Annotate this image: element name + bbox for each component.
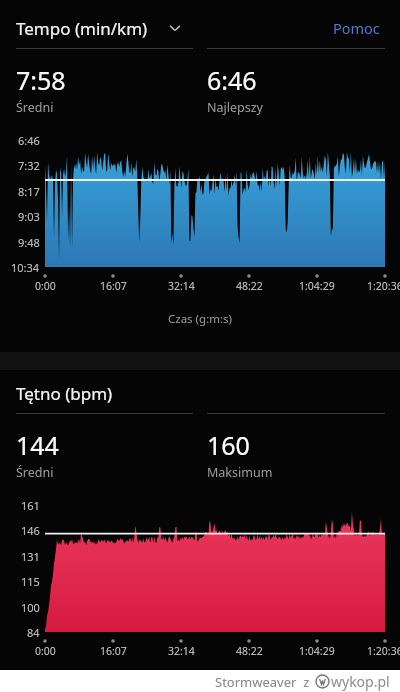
staticText: Czas (g:m:s) — [168, 311, 233, 327]
staticText: Tętno (bpm) — [16, 382, 113, 405]
staticText: 6:46 — [207, 63, 257, 97]
staticText: Najlepszy — [207, 99, 263, 116]
staticText: 7:32 — [18, 158, 40, 173]
staticText: 161 — [21, 498, 40, 513]
staticText: 144 — [16, 428, 59, 462]
staticText: Pomoc — [333, 18, 380, 38]
staticText: 131 — [21, 549, 40, 564]
button[interactable]: Change metric — [164, 17, 186, 39]
staticText: 16:07 — [100, 279, 127, 293]
staticText: Tempo (min/km) — [16, 17, 148, 40]
staticText: Stormweaver z — [215, 673, 310, 691]
staticText: 160 — [207, 428, 250, 462]
staticText: 48:22 — [236, 279, 263, 293]
staticText: 32:14 — [168, 644, 195, 658]
staticText: Maksimum — [207, 464, 273, 481]
staticText: 16:07 — [100, 644, 127, 658]
staticText: 1:20:36 — [367, 644, 400, 658]
staticText: 0:00 — [35, 279, 56, 293]
button[interactable]: Pomoc — [329, 14, 384, 42]
staticText: 1:04:29 — [299, 644, 335, 658]
staticText: 100 — [21, 600, 40, 615]
staticText: 115 — [21, 574, 40, 589]
staticText: Średni — [16, 464, 54, 481]
staticText: 0:00 — [35, 644, 56, 658]
staticText: wykop.pl — [331, 672, 390, 691]
staticText: 48:22 — [236, 644, 263, 658]
staticText: 9:03 — [18, 209, 40, 224]
staticText: 6:46 — [18, 133, 40, 148]
staticText: 1:20:36 — [367, 279, 400, 293]
staticText: 84 — [27, 625, 40, 640]
staticText: 146 — [21, 523, 40, 538]
staticText: 7:58 — [16, 63, 66, 97]
staticText: Średni — [16, 99, 54, 116]
staticText: 1:04:29 — [299, 279, 335, 293]
staticText: 9:48 — [18, 235, 40, 250]
staticText: 10:34 — [11, 260, 40, 275]
staticText: 8:17 — [18, 184, 40, 199]
staticText: 32:14 — [168, 279, 195, 293]
